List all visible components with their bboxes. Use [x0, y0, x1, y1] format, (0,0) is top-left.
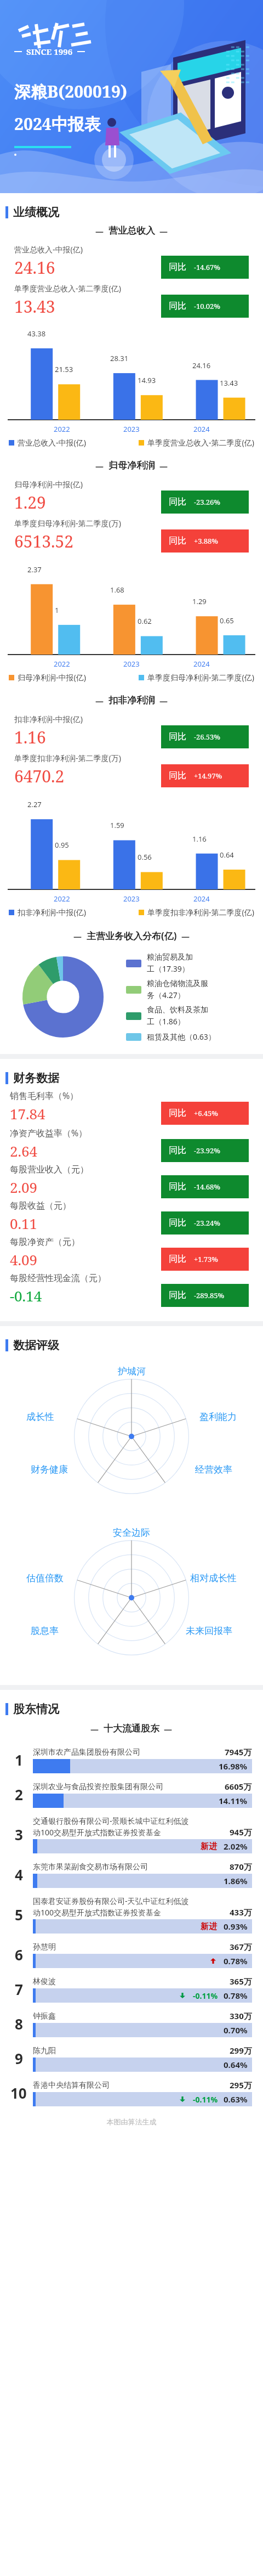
- staticText: 每股营业收入（元）: [10, 1164, 89, 1175]
- staticText: 43.38: [27, 329, 46, 339]
- staticText: 2024: [193, 659, 210, 669]
- staticText: 8: [15, 2014, 23, 2033]
- staticText: 单季度扣非净利润-第二季度(亿): [147, 907, 254, 917]
- staticText: 24.16: [192, 360, 211, 370]
- button[interactable]: 6: [0, 1941, 263, 1976]
- staticText: 3: [15, 1825, 23, 1844]
- staticText: 0.78%: [224, 1990, 248, 2001]
- staticText: 东莞市果菜副食交易市场有限公司: [33, 1862, 225, 1872]
- button[interactable]: 同比: [161, 1102, 249, 1125]
- staticText: 0.65: [220, 616, 234, 625]
- staticText: 陈九阳: [33, 2046, 225, 2056]
- staticText: 同比: [169, 1290, 186, 1301]
- staticText: 1: [55, 605, 59, 615]
- staticText: 0.95: [55, 840, 69, 850]
- staticText: -0.11%: [193, 1991, 218, 2001]
- staticText: 单季度归母净利润-第二季度(万): [14, 518, 121, 528]
- staticText: +6.45%: [194, 1108, 218, 1118]
- staticText: 7945万: [225, 1746, 252, 1757]
- button[interactable]: 同比: [161, 295, 249, 318]
- button[interactable]: 10: [0, 2079, 263, 2114]
- staticText: 2.37: [27, 565, 42, 574]
- staticText: 同比: [169, 731, 186, 742]
- button[interactable]: 4: [0, 1861, 263, 1896]
- staticText: 945万: [230, 1827, 252, 1837]
- staticText: 1: [15, 1750, 23, 1769]
- staticText: -14.67%: [194, 262, 220, 272]
- button[interactable]: 5: [0, 1896, 263, 1941]
- button[interactable]: 同比: [161, 1211, 249, 1235]
- button[interactable]: 同比: [161, 529, 249, 553]
- staticText: —: [159, 460, 168, 471]
- button[interactable]: 7: [0, 1976, 263, 2010]
- staticText: —: [95, 226, 104, 236]
- staticText: 1.29: [14, 491, 46, 514]
- staticText: 股息率: [31, 1625, 59, 1637]
- staticText: —: [95, 695, 104, 706]
- staticText: 14.11%: [219, 1795, 248, 1806]
- button[interactable]: 同比: [161, 764, 249, 787]
- staticText: SINCE 1996: [26, 46, 73, 57]
- staticText: 同比: [169, 497, 186, 508]
- staticText: 10: [10, 2083, 27, 2102]
- staticText: 归母净利润-中报(亿): [14, 479, 83, 489]
- staticText: 粮油贸易及加 工（17.39）: [147, 952, 193, 974]
- button[interactable]: 3: [0, 1816, 263, 1861]
- staticText: 孙慧明: [33, 1942, 225, 1952]
- staticText: 香港中央结算有限公司: [33, 2081, 225, 2090]
- button[interactable]: 同比: [161, 491, 249, 514]
- staticText: 同比: [169, 1254, 186, 1265]
- button[interactable]: 同比: [161, 725, 249, 748]
- staticText: —: [73, 931, 82, 942]
- staticText: 同比: [169, 262, 186, 273]
- staticText: 0.78%: [224, 1955, 248, 1966]
- staticText: 交通银行股份有限公司-景顺长城中证红利低波 动100交易型开放式指数证券投资基金: [33, 1816, 225, 1837]
- staticText: 深圳农业与食品投资控股集团有限公司: [33, 1782, 220, 1792]
- button[interactable]: 2: [0, 1781, 263, 1816]
- staticText: -10.02%: [194, 301, 220, 311]
- staticText: 2023: [123, 659, 140, 669]
- staticText: 2022: [54, 659, 70, 669]
- staticText: 2024中报表: [14, 112, 101, 135]
- staticText: 粮油仓储物流及服 务（4.27）: [147, 979, 208, 1000]
- staticText: 新进: [201, 1921, 217, 1932]
- staticText: 0.63%: [224, 2094, 248, 2105]
- button[interactable]: 9: [0, 2045, 263, 2079]
- staticText: 330万: [230, 2010, 252, 2021]
- button[interactable]: 1: [0, 1746, 263, 1781]
- staticText: 1.86%: [224, 1875, 248, 1886]
- staticText: 433万: [230, 1907, 252, 1918]
- button[interactable]: 同比: [161, 1248, 249, 1271]
- button[interactable]: 同比: [161, 1284, 249, 1307]
- staticText: 归母净利润-中报(亿): [18, 672, 86, 683]
- staticText: 单季度营业总收入-第二季度(亿): [147, 437, 254, 448]
- staticText: 同比: [169, 301, 186, 312]
- staticText: —: [164, 1723, 173, 1734]
- staticText: 4.09: [10, 1250, 38, 1269]
- staticText: 299万: [230, 2045, 252, 2056]
- staticText: 0.62: [138, 616, 152, 626]
- staticText: 0.64: [220, 850, 234, 860]
- staticText: —: [95, 460, 104, 471]
- staticText: 0.56: [138, 852, 152, 862]
- staticText: 财务数据: [13, 1071, 59, 1085]
- staticText: —: [181, 931, 190, 942]
- staticText: 每股收益（元）: [10, 1200, 71, 1211]
- staticText: 主营业务收入分布(亿): [87, 929, 177, 942]
- staticText: 2023: [123, 894, 140, 904]
- staticText: 2.09: [10, 1177, 38, 1197]
- staticText: 0.11: [10, 1214, 38, 1233]
- button[interactable]: 同比: [161, 256, 249, 279]
- staticText: 食品、饮料及茶加 工（1.86）: [147, 1005, 208, 1027]
- staticText: 0.70%: [224, 2025, 248, 2036]
- staticText: 未来回报率: [186, 1625, 232, 1637]
- staticText: 6470.2: [14, 765, 65, 787]
- button[interactable]: 8: [0, 2010, 263, 2045]
- button[interactable]: 同比: [161, 1175, 249, 1198]
- staticText: 国泰君安证券股份有限公司-天弘中证红利低波 动100交易型开放式指数证券投资基金: [33, 1896, 225, 1918]
- staticText: 归母净利润: [108, 460, 155, 471]
- staticText: 销售毛利率（%）: [10, 1090, 79, 1102]
- button[interactable]: 同比: [161, 1139, 249, 1162]
- staticText: 业绩概况: [13, 205, 59, 219]
- staticText: 24.16: [14, 256, 55, 279]
